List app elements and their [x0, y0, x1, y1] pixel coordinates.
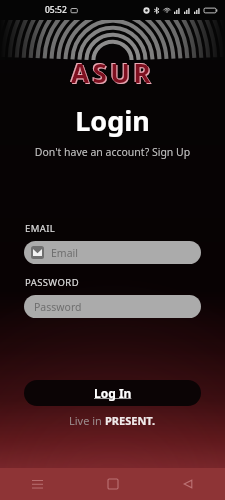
staticText: PASSWORD [25, 276, 79, 289]
staticText: Log In [94, 385, 132, 401]
button[interactable]: Back [150, 468, 225, 500]
staticText: ASUR [71, 55, 155, 90]
staticText: PRESENT. [105, 413, 156, 428]
staticText: ASUR [72, 56, 156, 91]
button[interactable]: Password [24, 295, 201, 318]
staticText: Login [0, 102, 225, 139]
staticText: Don't have an account? Sign Up [16, 145, 209, 159]
button[interactable]: Recent apps [0, 468, 75, 500]
staticText: Live in [69, 413, 105, 428]
button[interactable]: Email [24, 241, 201, 264]
staticText: 05:52 [45, 4, 67, 16]
staticText: Email [51, 246, 78, 260]
staticText: ASUR [70, 54, 154, 89]
button[interactable]: Log In [24, 380, 201, 406]
button[interactable]: Don't have an account? Sign Up [0, 144, 225, 160]
button[interactable]: Home [75, 468, 150, 500]
staticText: EMAIL [25, 222, 56, 235]
staticText: Password [34, 300, 82, 314]
